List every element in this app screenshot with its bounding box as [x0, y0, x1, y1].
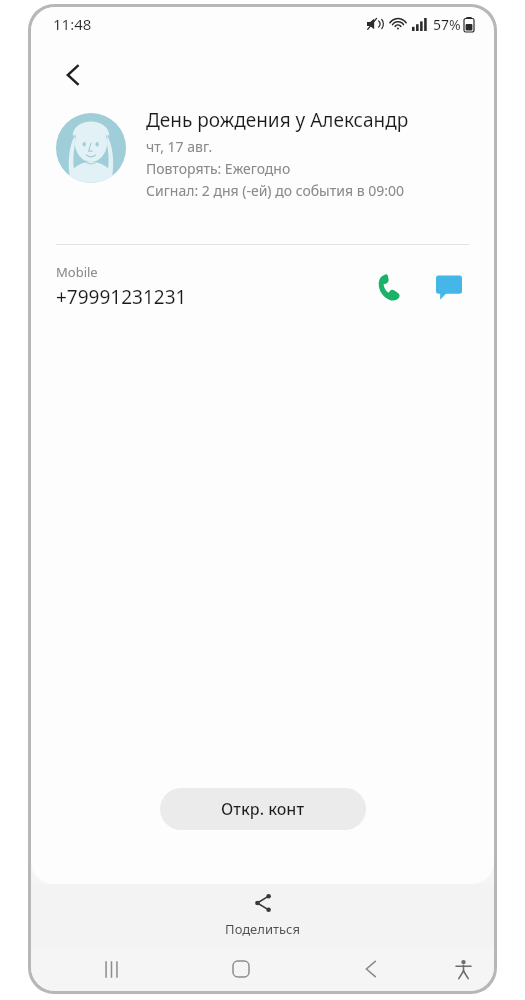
button[interactable]: Поделиться	[225, 884, 300, 947]
button[interactable]: День рождения у Александр	[56, 107, 474, 200]
staticText: Поделиться	[225, 920, 300, 938]
button[interactable]: Home	[176, 947, 306, 991]
staticText: +79991231231	[56, 284, 187, 310]
staticText: Сигнал: 2 дня (-ей) до события в 09:00	[146, 181, 404, 200]
button[interactable]: Back	[306, 947, 436, 991]
staticText: Mobile	[56, 263, 98, 281]
button[interactable]: Message	[426, 264, 472, 310]
button[interactable]: Mobile	[56, 263, 366, 310]
button[interactable]: Откр. конт	[160, 788, 366, 830]
staticText: 57%	[433, 15, 461, 34]
staticText: 11:48	[53, 14, 92, 34]
button[interactable]: Recent apps	[47, 947, 176, 991]
staticText: День рождения у Александр	[146, 107, 409, 133]
staticText: чт, 17 авг.	[146, 137, 213, 156]
staticText: Повторять: Ежегодно	[146, 159, 291, 178]
button[interactable]: Back	[45, 47, 101, 103]
button[interactable]: Call	[366, 264, 412, 310]
button[interactable]: Accessibility	[436, 947, 490, 991]
staticText: Откр. конт	[221, 798, 305, 820]
